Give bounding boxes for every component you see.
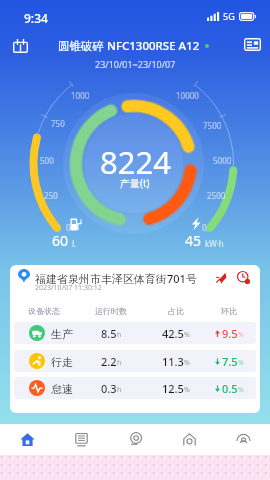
staticText: % [238,385,244,395]
staticText: 9.5 [222,326,238,340]
staticText: % [184,330,190,340]
staticText: 5000 [213,155,232,166]
staticText: 环比 [221,306,237,316]
staticText: % [238,330,244,340]
button[interactable]: 行走 [14,350,256,372]
staticText: 设备状态 [28,306,60,316]
button[interactable]: Home [0,424,54,455]
button[interactable]: Calendar [8,34,32,58]
staticText: % [184,385,190,395]
staticText: 0 [66,222,71,233]
button[interactable]: Reports [54,424,108,455]
staticText: 45 [185,231,202,250]
staticText: 0.3 [101,381,117,395]
staticText: 10000 [176,90,199,101]
staticText: 42.5 [162,326,184,340]
staticText: % [184,358,190,368]
button[interactable]: 生产 [14,322,256,344]
button[interactable]: History [235,269,251,285]
button[interactable]: Monitor [108,424,162,455]
button[interactable]: Profile [216,424,270,455]
staticText: 60 [52,231,69,250]
staticText: 750 [51,118,65,129]
staticText: h [117,385,122,395]
button[interactable]: Camera [162,424,216,455]
staticText: 0 [202,222,207,233]
staticText: 23/10/01~23/10/07 [95,58,176,70]
staticText: 5G [223,10,235,22]
staticText: 运行时数 [95,306,127,316]
staticText: 500 [40,155,54,166]
staticText: 7500 [203,120,222,131]
staticText: 占比 [168,306,184,316]
staticText: 250 [44,190,58,201]
button[interactable]: Device details [240,32,264,56]
staticText: 圆锥破碎 NFC1300RSE A12 [58,38,200,54]
staticText: kW·h [205,238,224,249]
staticText: 11.3 [162,354,184,368]
staticText: 12.5 [162,381,184,395]
staticText: 生产 [51,327,73,341]
staticText: h [117,330,122,340]
staticText: 2023/10/07 11:30:12 [35,283,102,293]
button[interactable]: Navigate [213,269,229,285]
staticText: 9:34 [24,10,48,26]
staticText: 8224 [100,141,171,183]
button[interactable]: 怠速 [14,377,256,399]
staticText: 1000 [71,90,90,101]
staticText: 产量(t) [120,176,150,190]
staticText: 行走 [51,355,73,369]
staticText: 8.5 [101,326,117,340]
staticText: 福建省泉州市丰泽区体育街701号 [35,271,197,286]
staticText: 0.5 [222,381,238,395]
staticText: 2.2 [101,354,117,368]
staticText: 7.5 [222,354,238,368]
staticText: % [238,358,244,368]
staticText: 怠速 [51,382,73,396]
staticText: h [117,358,122,368]
staticText: L [72,238,77,249]
staticText: 2500 [207,190,226,201]
